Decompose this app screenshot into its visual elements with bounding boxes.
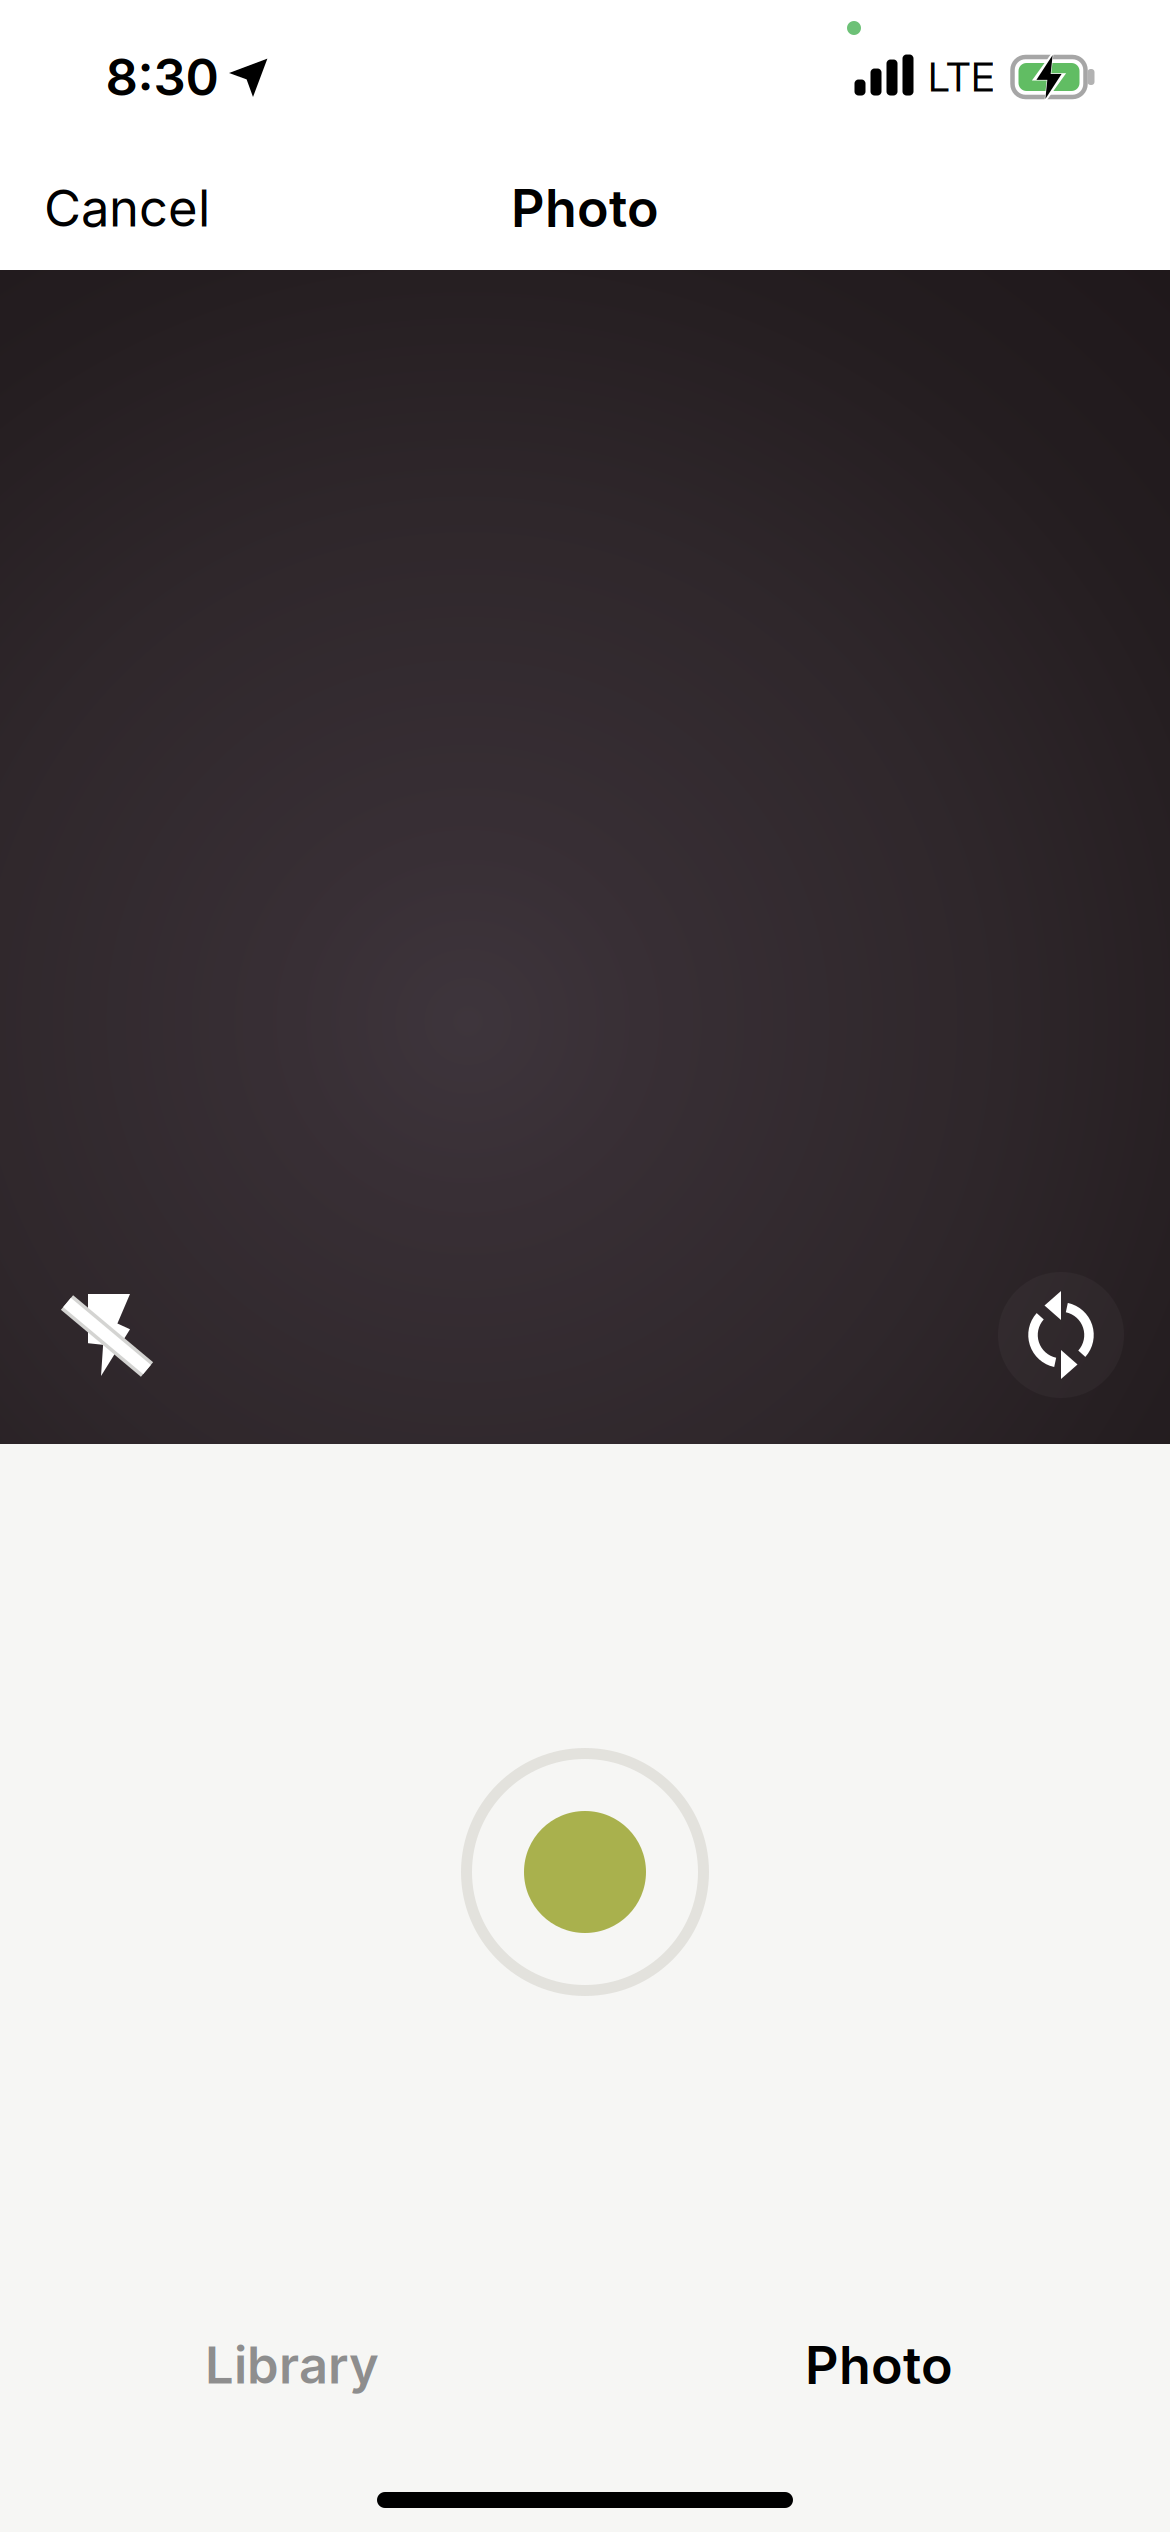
staticText: Cancel [44, 178, 210, 238]
button[interactable]: Cancel [44, 178, 210, 238]
button[interactable]: Library [205, 2335, 379, 2395]
staticText: LTE [928, 53, 994, 101]
staticText: 8:30 [105, 47, 218, 107]
staticText: Photo [805, 2334, 953, 2396]
button[interactable]: Photo [805, 2334, 953, 2396]
button[interactable]: Flash off [52, 1280, 162, 1390]
button[interactable]: Take photo [460, 1747, 710, 1997]
button[interactable]: Switch camera [998, 1272, 1124, 1398]
staticText: Library [205, 2335, 379, 2395]
staticText: Photo [511, 177, 659, 239]
